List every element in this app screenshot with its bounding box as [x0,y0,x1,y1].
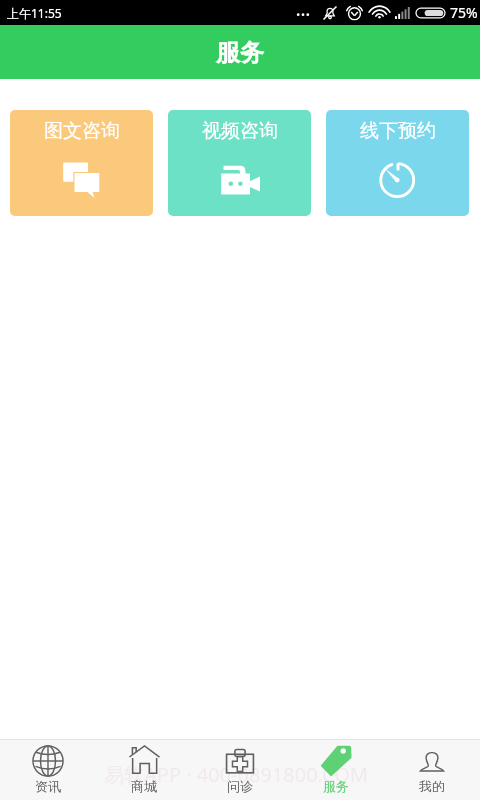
staticText: 资讯 [35,778,61,794]
staticText: 商城 [131,778,157,794]
staticText: 上午11:55 [7,5,62,21]
staticText: 图文咨询 [44,119,120,143]
staticText: 75% [450,3,478,22]
button[interactable]: 商城 [96,740,192,800]
button[interactable]: 问诊 [192,740,288,800]
staticText: 服务 [216,38,264,68]
staticText: 易软APP · 400-0891800.COM [104,761,368,788]
button[interactable]: 资讯 [0,740,96,800]
staticText: 服务 [323,778,349,794]
button[interactable]: 我的 [384,740,480,800]
button[interactable]: 视频咨询 [168,110,311,216]
staticText: 我的 [419,778,445,794]
staticText: 线下预约 [360,119,436,143]
button[interactable]: 线下预约 [326,110,469,216]
button[interactable]: 图文咨询 [10,110,153,216]
button[interactable]: 服务 [288,740,384,800]
staticText: 视频咨询 [202,119,278,143]
staticText: 问诊 [227,778,253,794]
